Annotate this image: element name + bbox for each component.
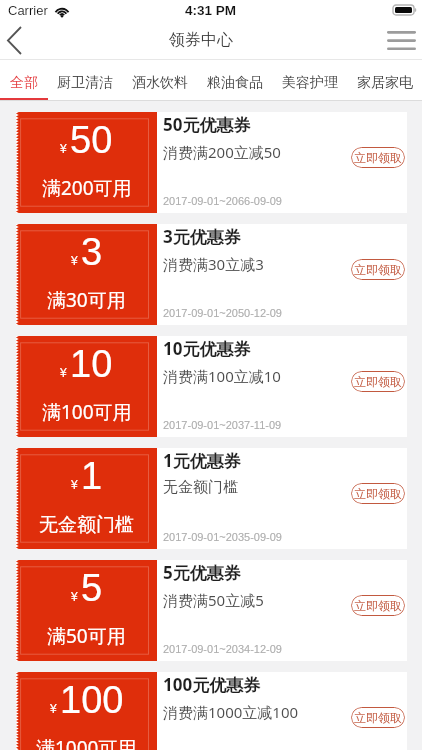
- staticText: 厨卫清洁: [57, 74, 113, 92]
- staticText: 10元优惠券: [163, 337, 251, 360]
- button[interactable]: 美容护理: [272, 60, 347, 101]
- staticText: ¥: [50, 702, 57, 715]
- staticText: 1: [81, 455, 103, 497]
- button[interactable]: ¥: [16, 112, 407, 213]
- staticText: 2017-09-01~2050-12-09: [163, 307, 282, 319]
- button[interactable]: ¥: [16, 672, 407, 750]
- staticText: 粮油食品: [207, 74, 263, 92]
- button[interactable]: 立即领取: [351, 147, 405, 168]
- staticText: 满1000可用: [36, 735, 137, 750]
- staticText: 立即领取: [354, 150, 402, 165]
- staticText: 无金额门槛: [39, 513, 134, 537]
- staticText: 50元优惠券: [163, 113, 251, 136]
- button[interactable]: 立即领取: [351, 595, 405, 616]
- button[interactable]: 粮油食品: [197, 60, 272, 101]
- staticText: 消费满200立减50: [163, 142, 281, 162]
- staticText: ¥: [71, 590, 78, 603]
- button[interactable]: 厨卫清洁: [47, 60, 122, 101]
- staticText: 满200可用: [42, 175, 132, 201]
- staticText: 2017-09-01~2066-09-09: [163, 195, 282, 207]
- staticText: 100: [60, 679, 124, 721]
- staticText: ¥: [71, 478, 78, 491]
- staticText: 美容护理: [282, 74, 338, 92]
- staticText: 立即领取: [354, 486, 402, 501]
- staticText: 立即领取: [354, 598, 402, 613]
- staticText: 3: [81, 231, 103, 273]
- staticText: 2017-09-01~2034-12-09: [163, 643, 282, 655]
- button[interactable]: 家居家电: [347, 60, 422, 101]
- staticText: 50: [70, 119, 113, 161]
- button[interactable]: 酒水饮料: [122, 60, 197, 101]
- staticText: 消费满50立减5: [163, 590, 264, 610]
- staticText: 消费满100立减10: [163, 366, 281, 386]
- staticText: 领券中心: [169, 30, 233, 50]
- staticText: 3元优惠券: [163, 225, 241, 248]
- staticText: 5: [81, 567, 103, 609]
- button[interactable]: Back: [0, 20, 40, 60]
- staticText: ¥: [60, 366, 67, 379]
- staticText: ¥: [60, 142, 67, 155]
- staticText: 家居家电: [357, 74, 413, 92]
- button[interactable]: 立即领取: [351, 483, 405, 504]
- staticText: 1元优惠券: [163, 449, 241, 472]
- staticText: 消费满30立减3: [163, 254, 264, 274]
- staticText: 无金额门槛: [163, 478, 238, 497]
- staticText: 满50可用: [47, 623, 126, 649]
- staticText: 满100可用: [42, 399, 132, 425]
- button[interactable]: ¥: [16, 224, 407, 325]
- button[interactable]: ¥: [16, 448, 407, 549]
- button[interactable]: 立即领取: [351, 259, 405, 280]
- staticText: 10: [70, 343, 113, 385]
- staticText: 酒水饮料: [132, 74, 188, 92]
- staticText: 100元优惠券: [163, 673, 261, 696]
- staticText: 消费满1000立减100: [163, 702, 299, 722]
- button[interactable]: 全部: [0, 60, 47, 101]
- button[interactable]: ¥: [16, 560, 407, 661]
- staticText: ¥: [71, 254, 78, 267]
- staticText: 立即领取: [354, 710, 402, 725]
- button[interactable]: 立即领取: [351, 707, 405, 728]
- staticText: 2017-09-01~2035-09-09: [163, 531, 282, 543]
- staticText: 立即领取: [354, 374, 402, 389]
- staticText: 全部: [10, 74, 38, 92]
- staticText: Carrier: [8, 3, 48, 18]
- button[interactable]: 立即领取: [351, 371, 405, 392]
- button[interactable]: ¥: [16, 336, 407, 437]
- staticText: 4:31 PM: [185, 3, 237, 18]
- button[interactable]: Menu: [376, 20, 422, 60]
- staticText: 2017-09-01~2037-11-09: [163, 419, 282, 431]
- staticText: 立即领取: [354, 262, 402, 277]
- staticText: 5元优惠券: [163, 561, 241, 584]
- staticText: 满30可用: [47, 287, 126, 313]
